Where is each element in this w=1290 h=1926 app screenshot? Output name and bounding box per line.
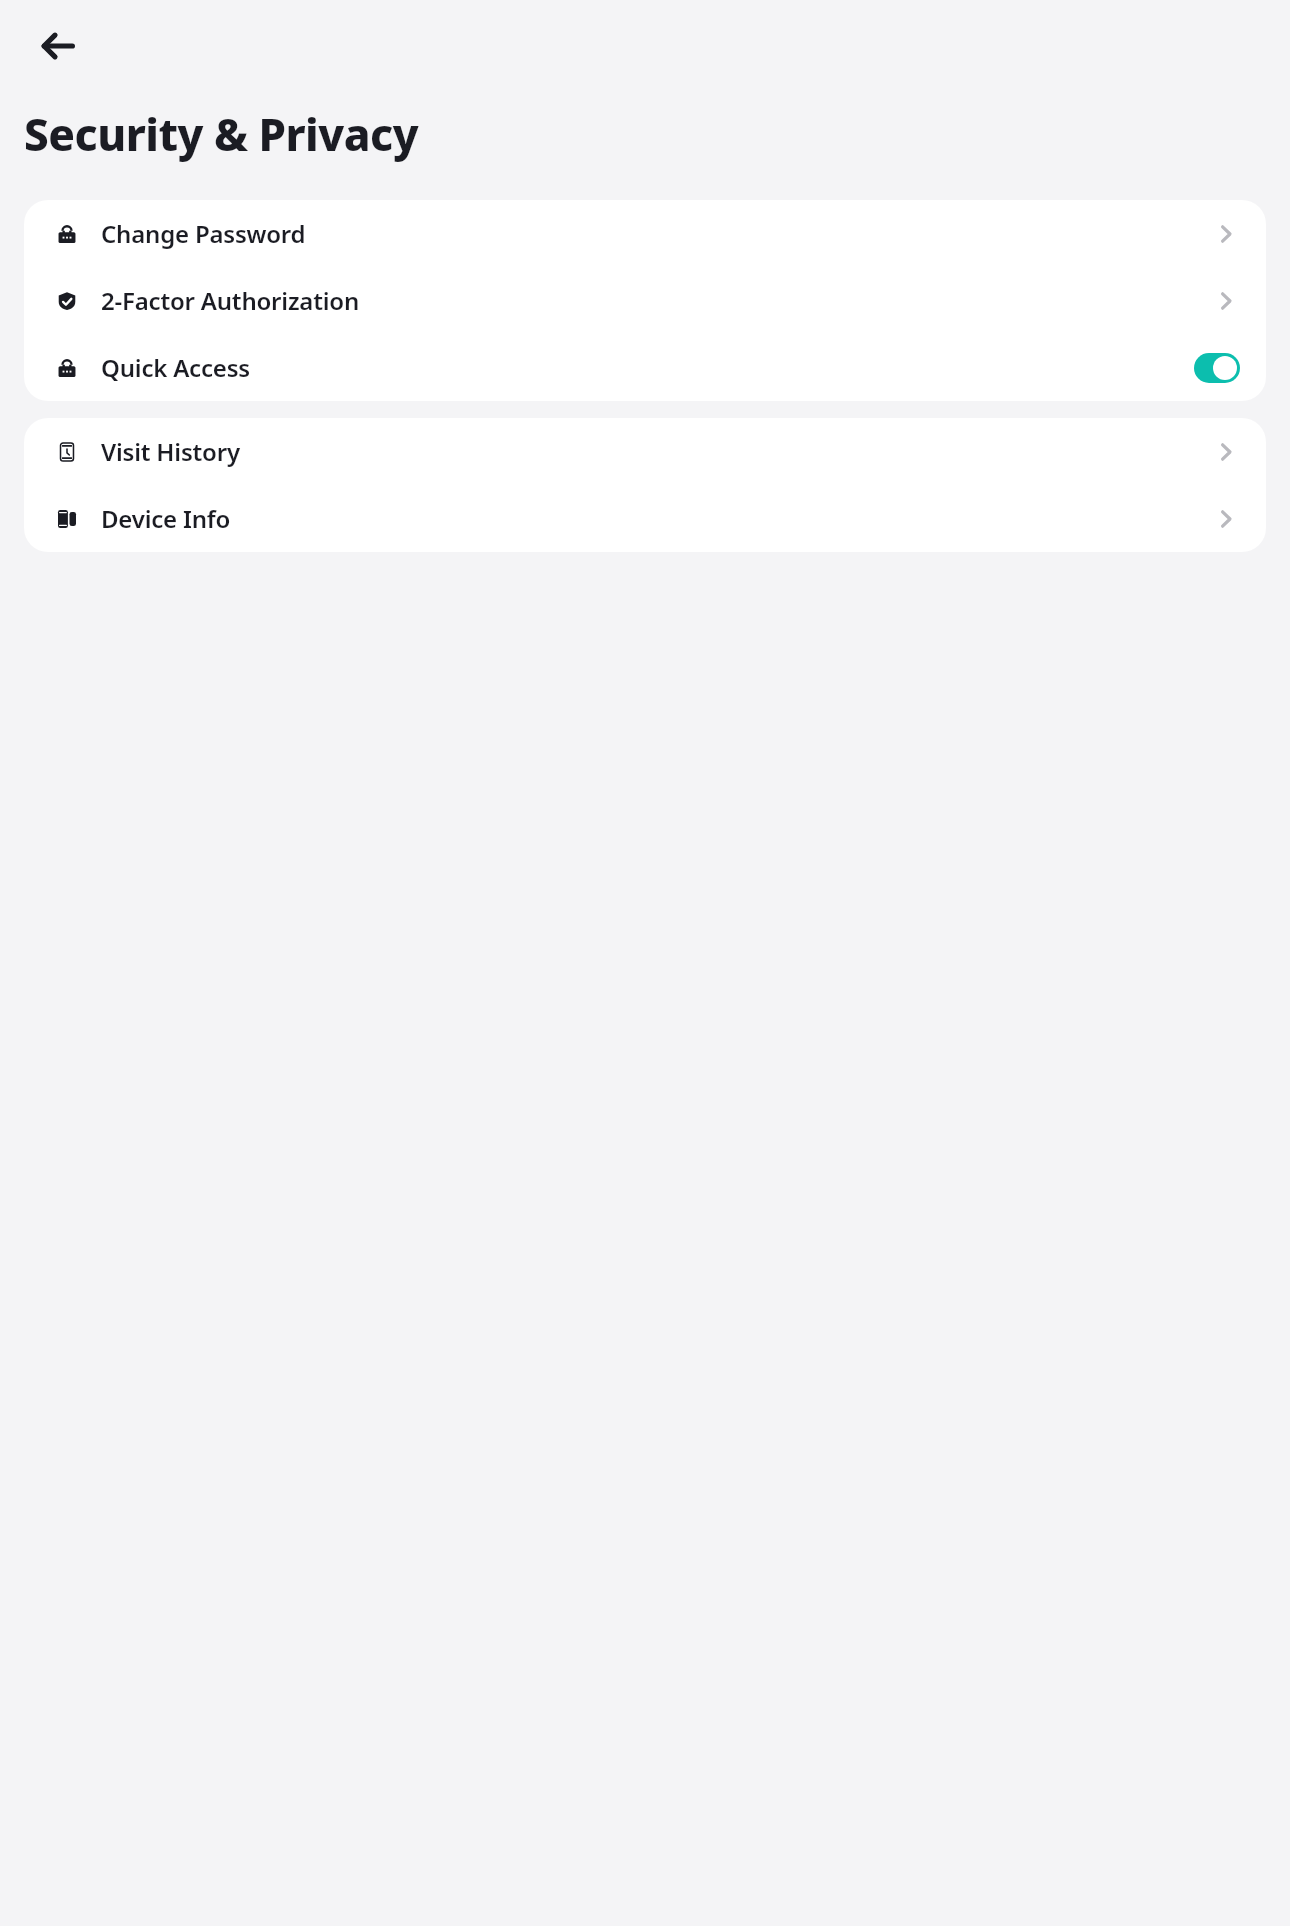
button[interactable]: 2-Factor Authorization (24, 267, 1266, 334)
button[interactable]: Quick Access (24, 334, 1266, 401)
button[interactable]: Change Password (24, 200, 1266, 267)
staticText: Change Password (101, 217, 306, 250)
button[interactable]: Quick Access toggle, on (1194, 353, 1240, 383)
button[interactable]: Device Info (24, 485, 1266, 552)
staticText: 2-Factor Authorization (101, 284, 360, 317)
staticText: Visit History (101, 435, 240, 468)
other: Open (1212, 287, 1240, 315)
button[interactable]: Visit History (24, 418, 1266, 485)
button[interactable]: Back (28, 16, 88, 76)
other: Open (1212, 220, 1240, 248)
other: Open (1212, 438, 1240, 466)
staticText: Security & Privacy (24, 104, 419, 164)
staticText: Device Info (101, 502, 231, 535)
other: Open (1212, 505, 1240, 533)
staticText: Quick Access (101, 351, 250, 384)
